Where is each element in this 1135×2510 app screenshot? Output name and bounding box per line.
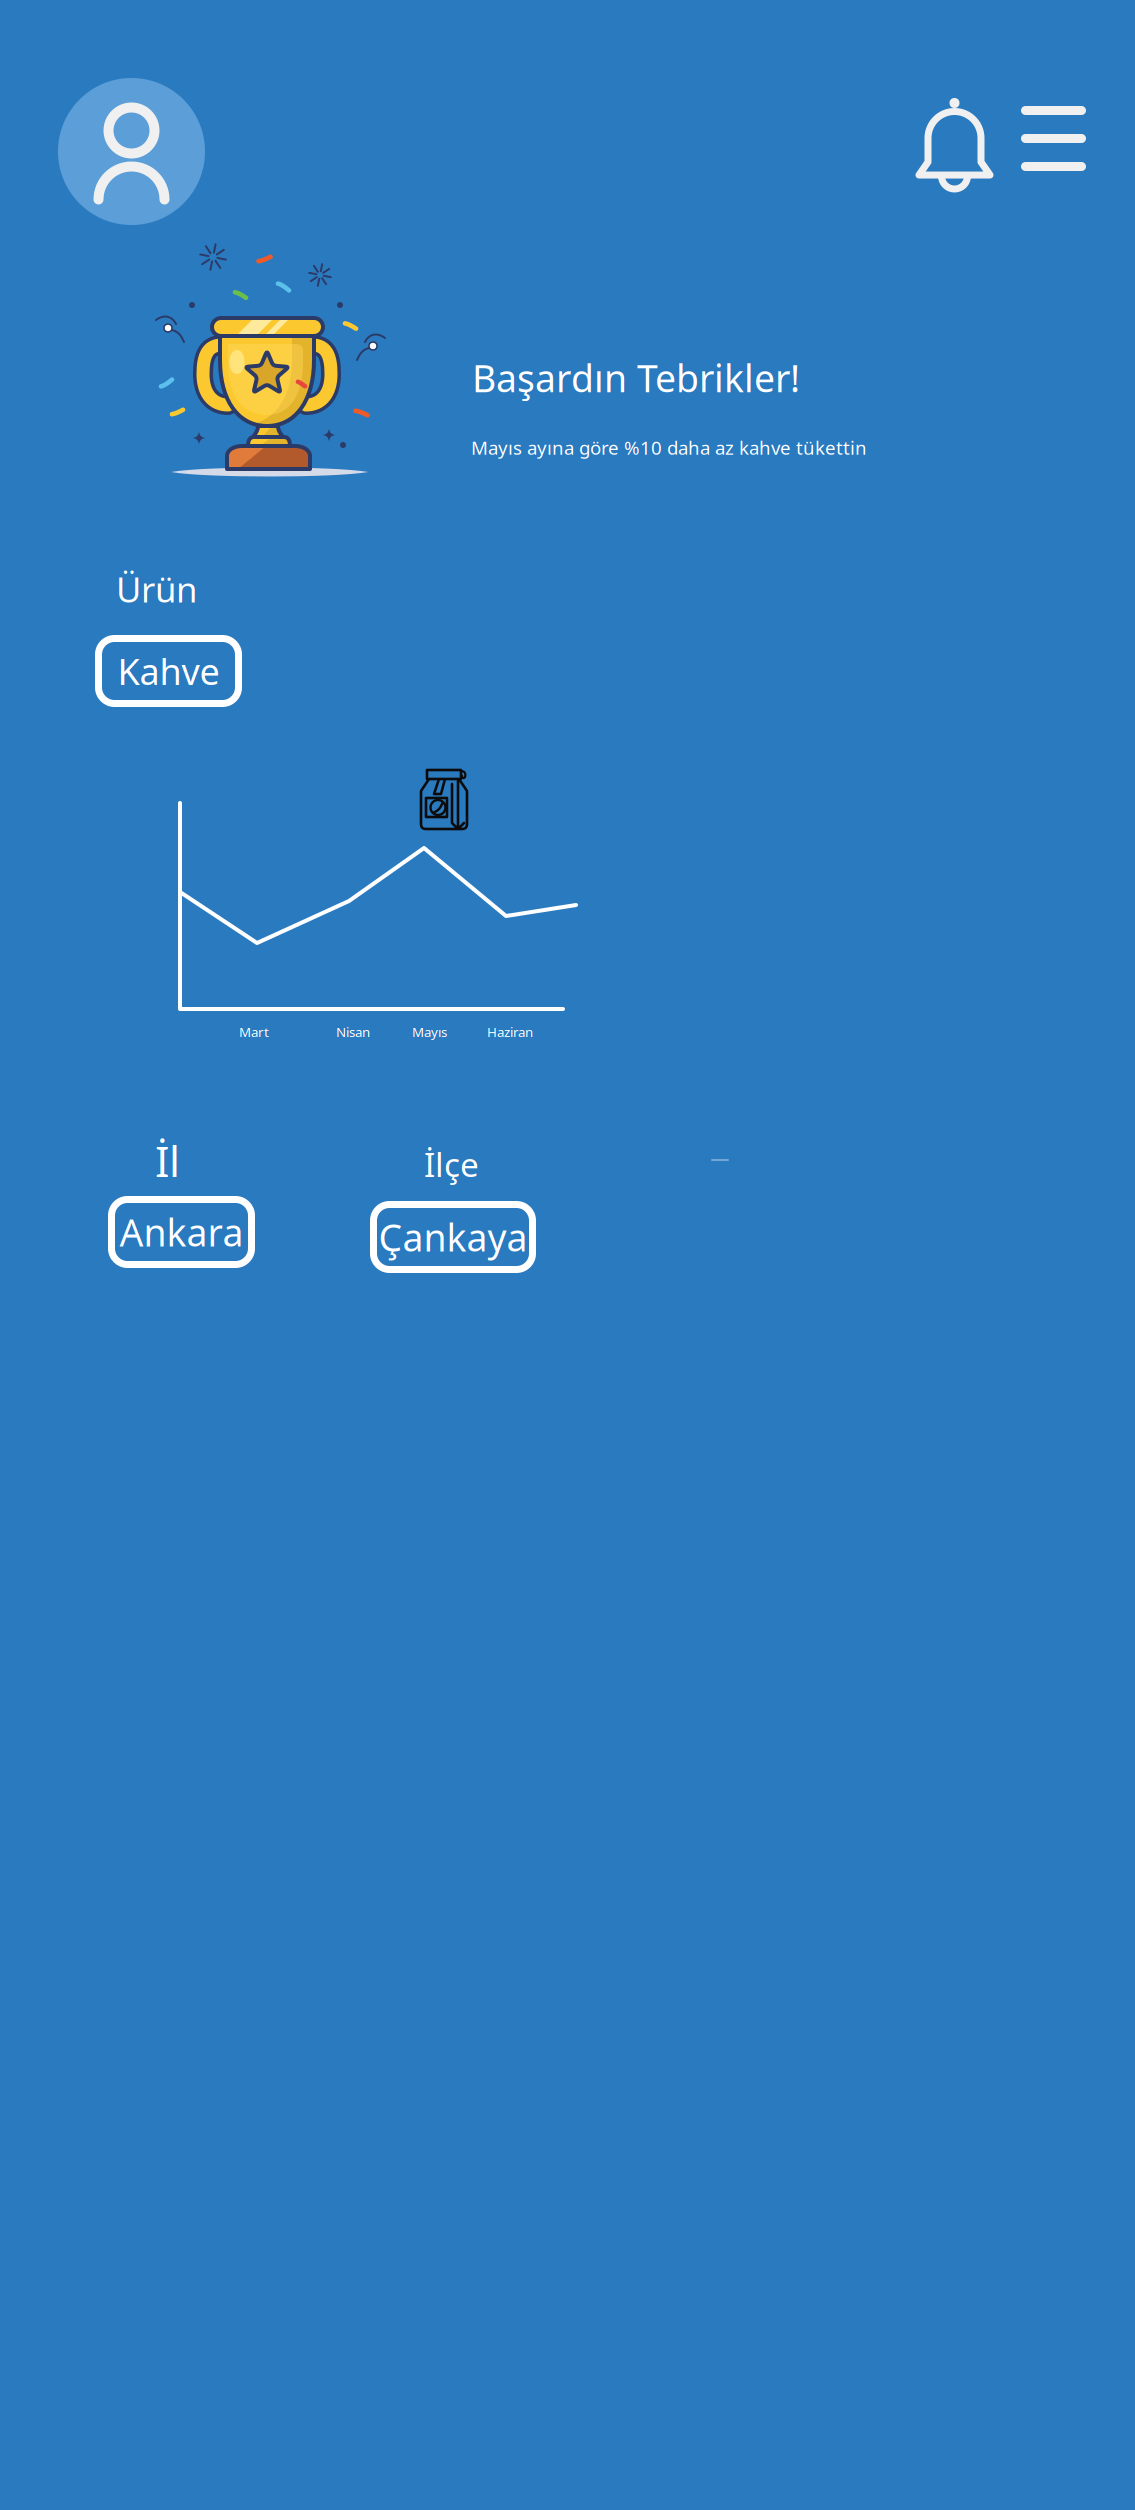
staticText: Çankaya	[378, 1212, 527, 1262]
button[interactable]: Notifications	[914, 98, 995, 190]
button[interactable]: Kahve	[95, 635, 242, 707]
staticText: İl	[155, 1132, 180, 1189]
staticText: Mayıs	[412, 1023, 447, 1041]
button[interactable]: Menu	[1021, 106, 1086, 171]
staticText: Nisan	[336, 1023, 370, 1041]
button[interactable]: Profile	[58, 78, 205, 225]
button[interactable]: Çankaya	[370, 1201, 536, 1273]
staticText: Ankara	[119, 1207, 243, 1257]
button[interactable]: Ankara	[108, 1196, 255, 1268]
staticText: İlçe	[424, 1142, 479, 1186]
staticText: Ürün	[116, 566, 197, 612]
staticText: Başardın Tebrikler!	[472, 353, 800, 403]
staticText: Kahve	[117, 647, 219, 695]
staticText: Mart	[239, 1023, 269, 1041]
staticText: Haziran	[487, 1023, 533, 1041]
staticText: Mayıs ayına göre %10 daha az kahve tüket…	[471, 435, 867, 460]
